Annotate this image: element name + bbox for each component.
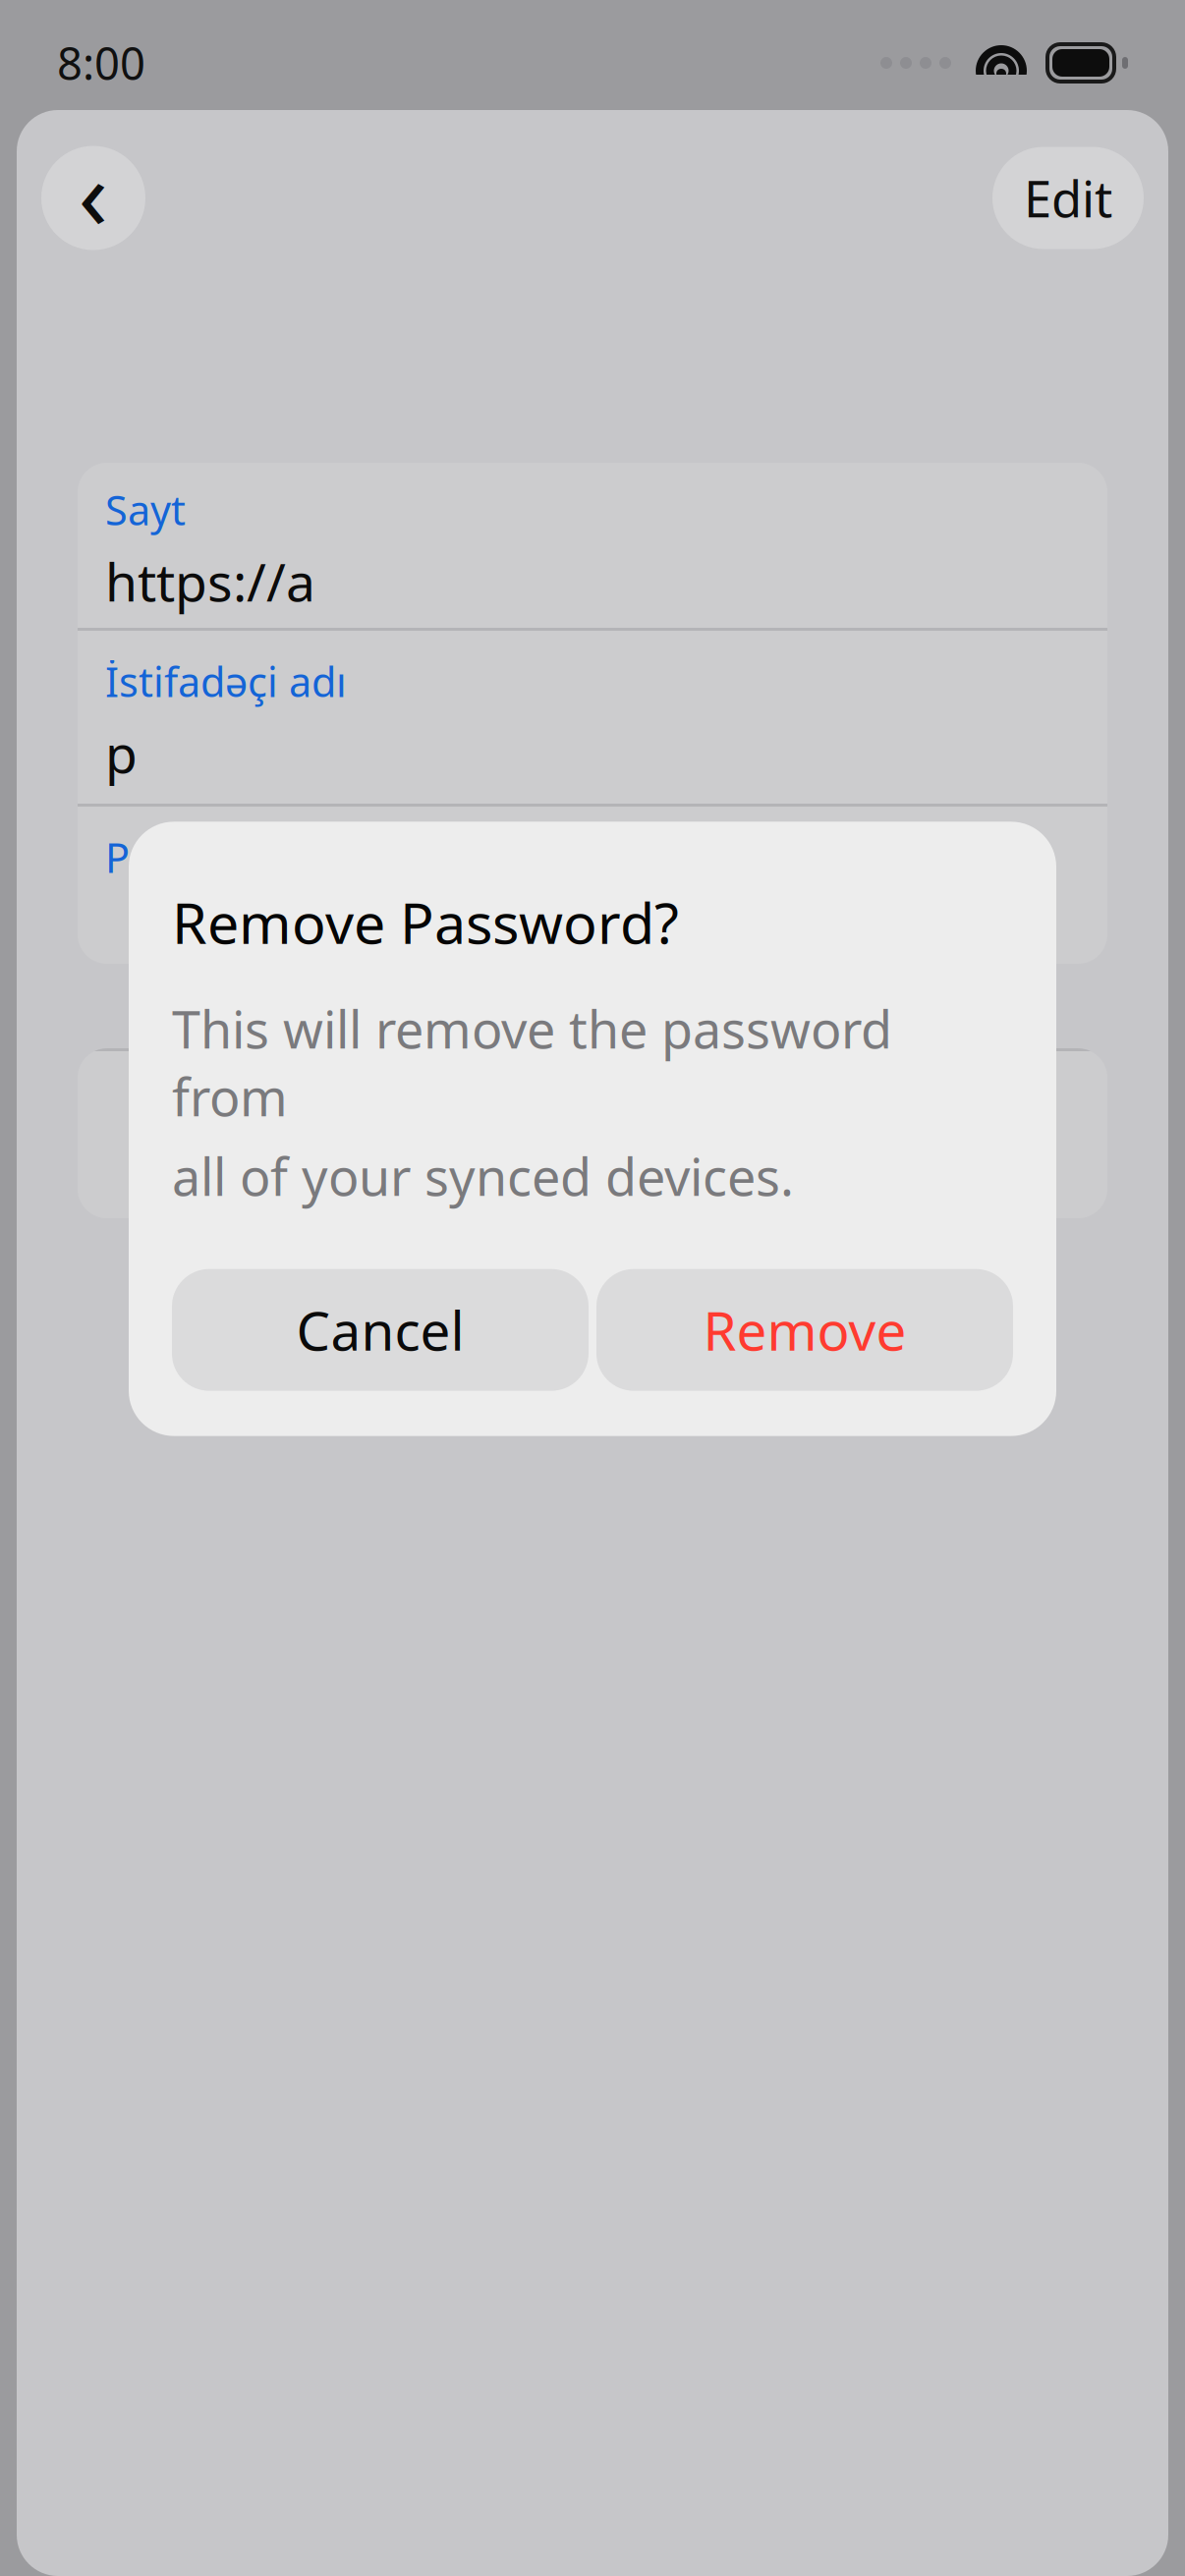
staticText: Edit [1024,165,1112,231]
staticText: https://a [105,546,315,616]
staticText: Cancel [296,1294,464,1366]
staticText: all of your synced devices. [172,1142,794,1210]
staticText: İstifadəçi adı [105,654,347,708]
button[interactable]: Edit [992,147,1144,249]
staticText: Remove [703,1294,906,1366]
button[interactable]: Cancel [172,1269,589,1391]
staticText: Sayt [105,483,186,537]
staticText: Remove Password? [172,885,679,959]
button[interactable]: Remove [596,1269,1013,1391]
button[interactable]: Sayt [78,463,1107,628]
button[interactable]: Parol [78,807,1107,964]
button[interactable]: Back [41,134,145,262]
staticText: This will remove the password from [172,995,892,1130]
staticText: Parol [105,830,203,884]
staticText: p [105,718,138,788]
staticText: ‹ [78,128,109,256]
button[interactable]: İstifadəçi adı [78,631,1107,804]
staticText: 8:00 [57,33,145,92]
